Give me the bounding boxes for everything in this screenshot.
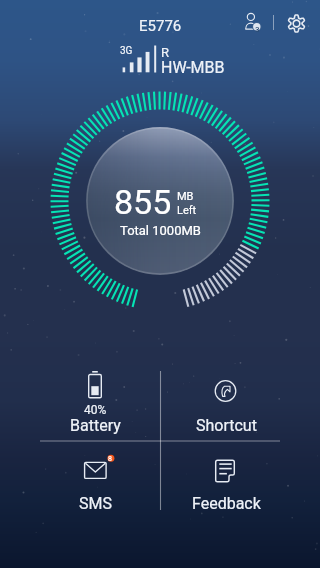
staticText: Shortcut (196, 416, 257, 435)
staticText: 3 (255, 25, 260, 34)
staticText: Left (177, 204, 197, 217)
staticText: HW-MBB (161, 58, 225, 77)
staticText: Battery (70, 416, 121, 435)
staticText: E5776 (139, 17, 182, 35)
staticText: MB (177, 190, 194, 203)
button[interactable]: Feedback (161, 448, 291, 518)
button[interactable]: Connected devices (241, 10, 265, 34)
button[interactable]: Shortcut (161, 360, 291, 440)
staticText: 8 (108, 455, 112, 463)
staticText: Total 1000MB (120, 223, 201, 238)
staticText: 855 (114, 182, 172, 222)
staticText: Feedback (192, 494, 261, 513)
button[interactable]: 8 (30, 448, 160, 518)
staticText: R (161, 45, 170, 60)
button[interactable]: 40% (30, 360, 160, 440)
button[interactable]: Settings (284, 11, 308, 35)
staticText: SMS (79, 494, 112, 513)
staticText: 3G (120, 45, 133, 57)
staticText: 40% (84, 403, 107, 417)
